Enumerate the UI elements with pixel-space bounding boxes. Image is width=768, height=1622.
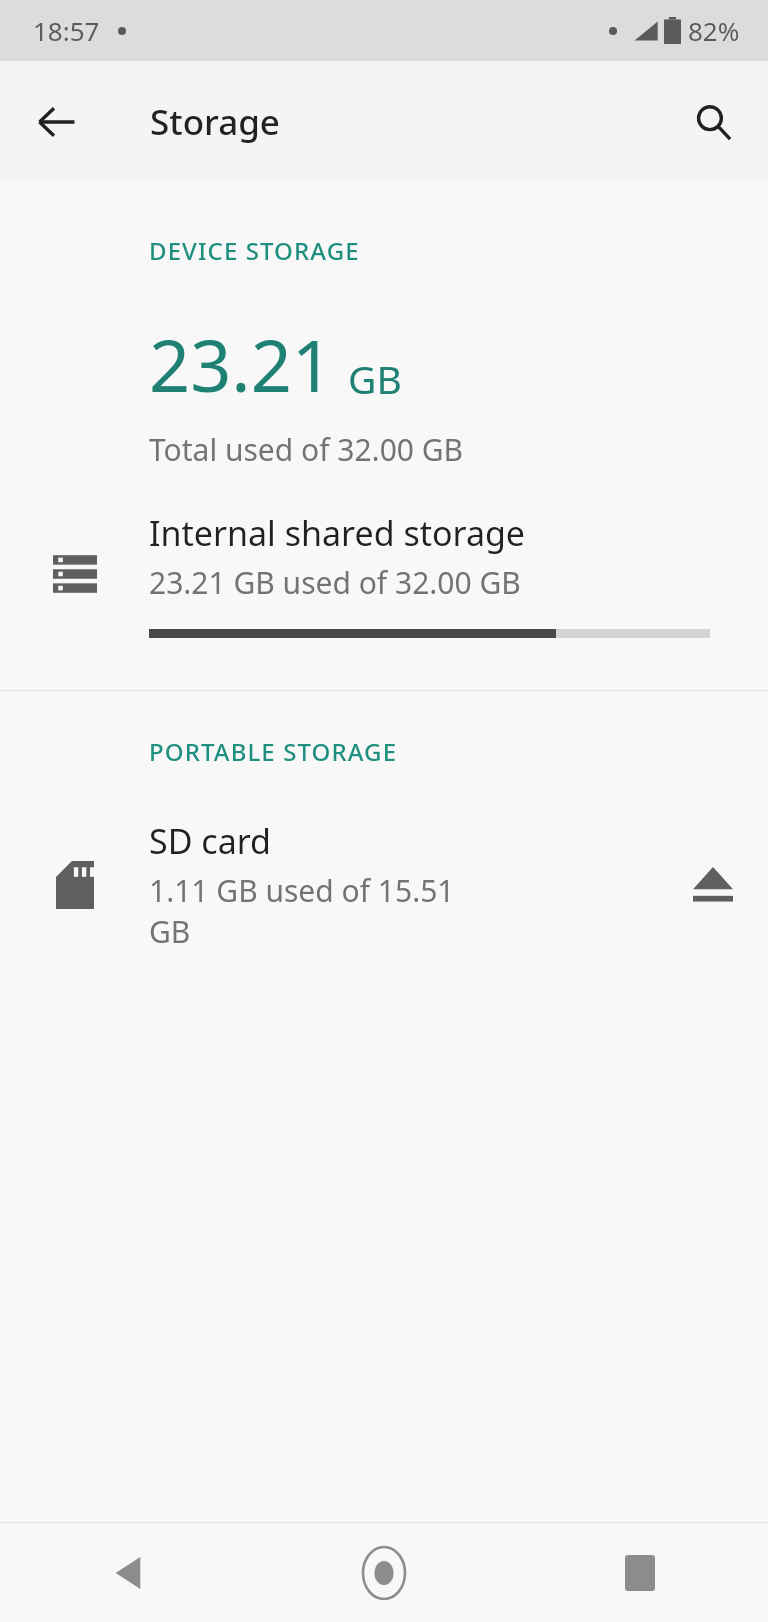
staticText: DEVICE STORAGE <box>149 234 360 267</box>
staticText: 1.11 GB used of 15.51 <box>149 870 455 911</box>
button[interactable]: Back <box>0 1523 256 1622</box>
staticText: 23.21 GB used of 32.00 GB <box>149 562 521 603</box>
staticText: Storage <box>150 98 280 146</box>
staticText: 82% <box>688 13 740 48</box>
button[interactable]: Eject SD card <box>658 837 768 933</box>
staticText: SD card <box>149 818 271 864</box>
button[interactable]: Back <box>18 83 96 161</box>
staticText: 23.21 <box>149 315 334 413</box>
staticText: GB <box>149 911 191 952</box>
button[interactable]: Recent apps <box>512 1523 768 1622</box>
button[interactable]: Search <box>674 83 752 161</box>
button[interactable]: SD card <box>0 818 768 952</box>
button[interactable]: Internal shared storage <box>0 510 768 638</box>
staticText: Total used of 32.00 GB <box>149 429 464 470</box>
button[interactable]: Home <box>256 1523 512 1622</box>
staticText: GB <box>348 352 402 405</box>
staticText: Internal shared storage <box>149 510 526 556</box>
staticText: PORTABLE STORAGE <box>149 735 398 768</box>
staticText: 18:57 <box>33 13 100 48</box>
